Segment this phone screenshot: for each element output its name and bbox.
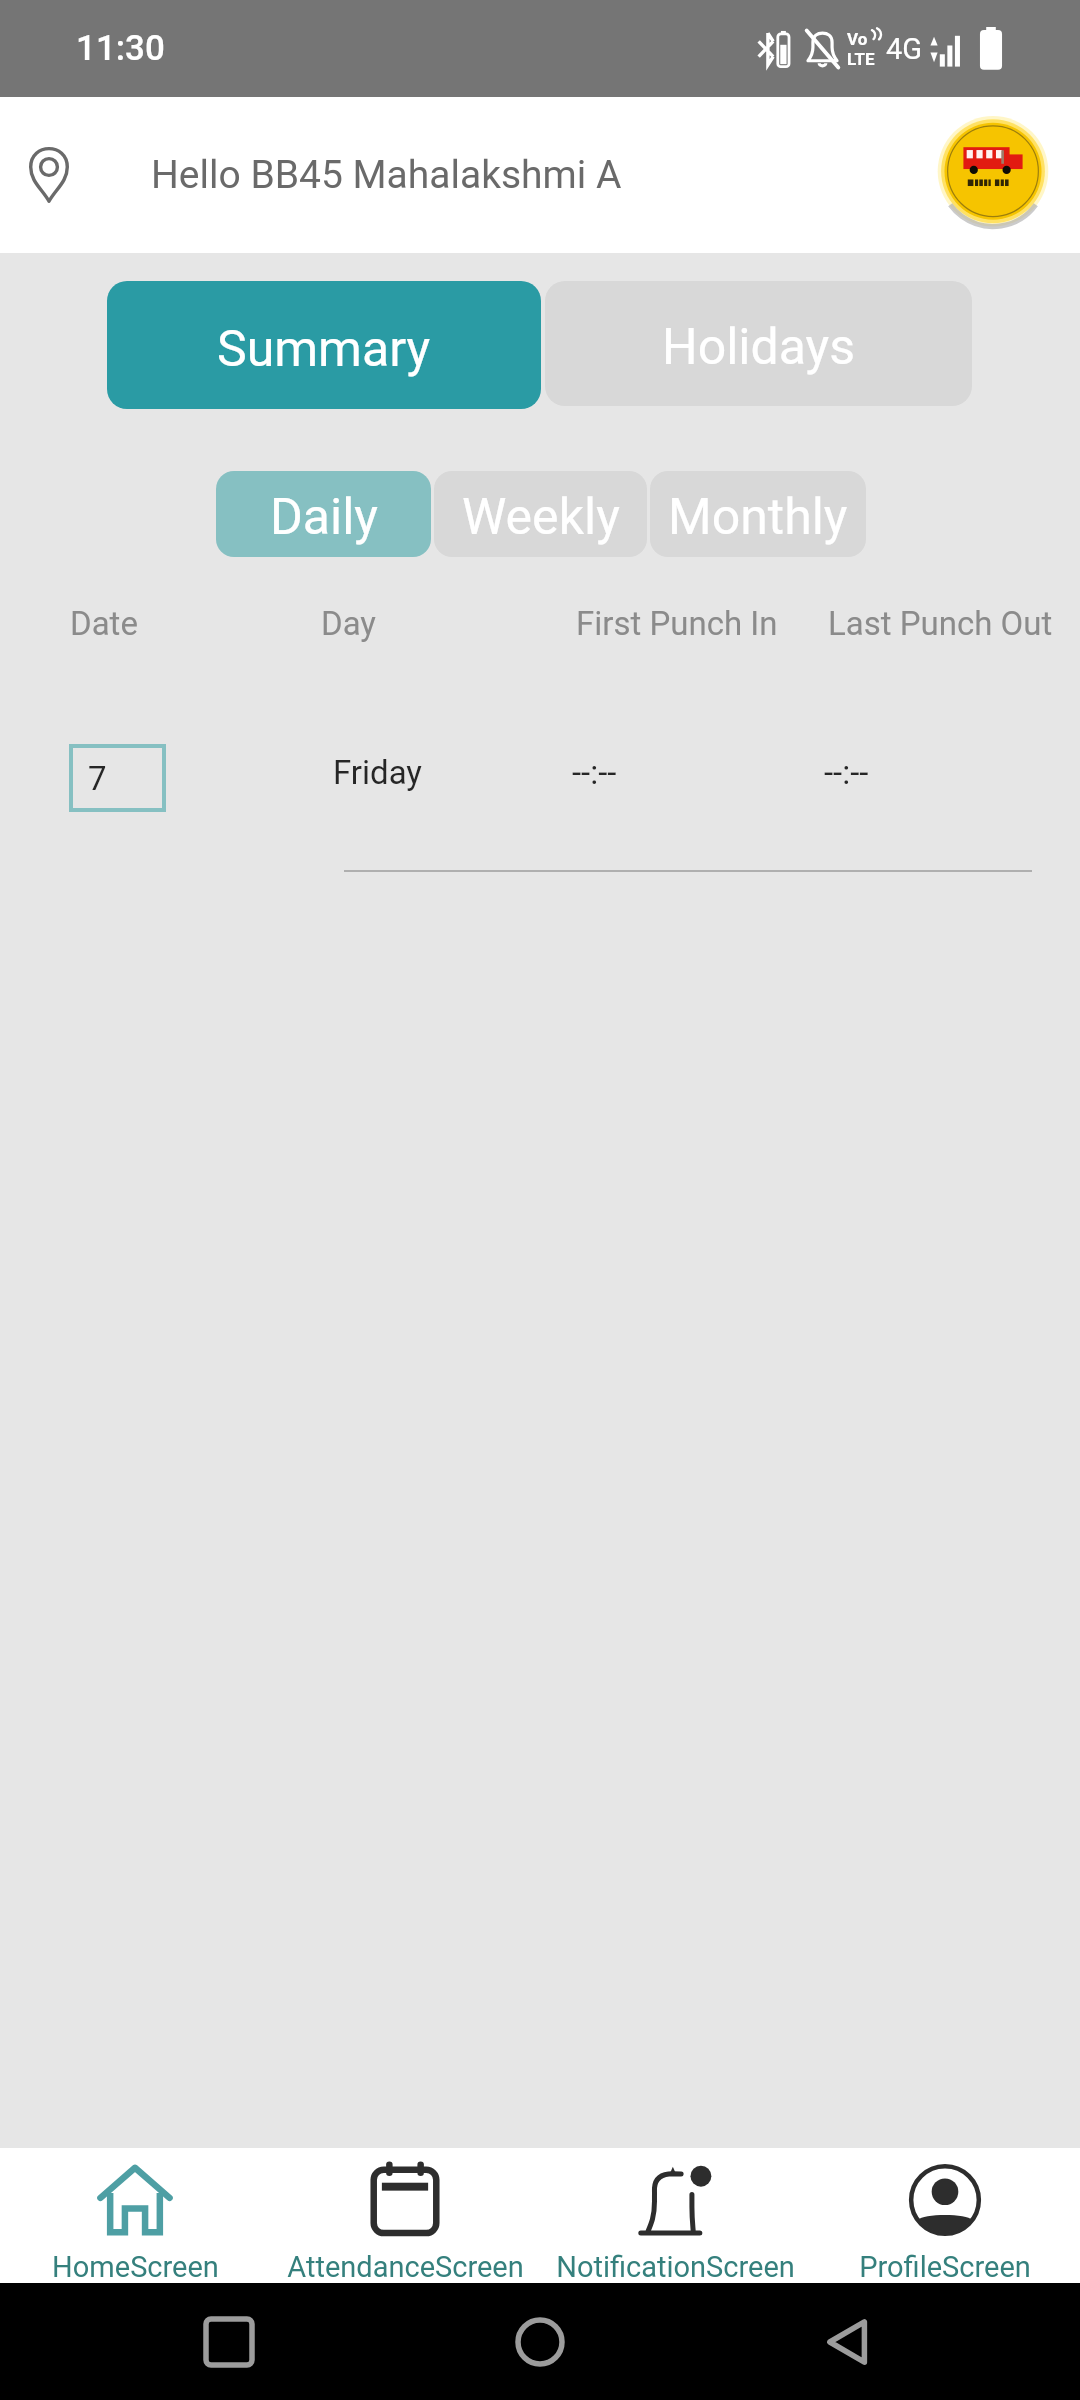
staticText: Monthly bbox=[668, 488, 848, 547]
button[interactable]: NotificationScreen bbox=[540, 2148, 810, 2283]
button[interactable]: ProfileScreen bbox=[810, 2148, 1080, 2283]
button[interactable]: Daily bbox=[216, 471, 431, 557]
staticText: First Punch In bbox=[576, 604, 778, 643]
other: Back bbox=[826, 2318, 874, 2366]
staticText: NotificationScreen bbox=[556, 2250, 795, 2283]
staticText: 7 bbox=[88, 759, 107, 798]
button[interactable]: Monthly bbox=[650, 471, 866, 557]
button[interactable]: Location bbox=[10, 136, 88, 214]
other: Home bbox=[515, 2317, 565, 2367]
button[interactable]: HomeScreen bbox=[0, 2148, 270, 2283]
staticText: LTE bbox=[847, 49, 875, 69]
staticText: Day bbox=[321, 604, 376, 643]
staticText: Date bbox=[70, 604, 138, 643]
button[interactable]: Magic Bus logo bbox=[930, 112, 1056, 238]
staticText: Weekly bbox=[462, 488, 620, 547]
staticText: ProfileScreen bbox=[859, 2250, 1031, 2283]
staticText: Friday bbox=[333, 753, 422, 792]
staticText: HomeScreen bbox=[52, 2250, 219, 2283]
staticText: --:-- bbox=[824, 753, 869, 792]
other: Recent apps bbox=[206, 2319, 252, 2365]
staticText: Daily bbox=[270, 488, 378, 547]
staticText: AttendanceScreen bbox=[287, 2250, 524, 2283]
staticText: Vo bbox=[847, 29, 868, 49]
staticText: Holidays bbox=[662, 318, 855, 377]
button[interactable]: Holidays bbox=[545, 281, 972, 406]
button[interactable]: 7 bbox=[69, 744, 166, 812]
staticText: Hello BB45 Mahalakshmi A bbox=[151, 152, 622, 198]
staticText: Summary bbox=[217, 320, 431, 379]
button[interactable]: Summary bbox=[107, 281, 541, 409]
staticText: 11:30 bbox=[76, 28, 165, 69]
staticText: --:-- bbox=[572, 753, 617, 792]
button[interactable]: AttendanceScreen bbox=[270, 2148, 540, 2283]
staticText: 4G bbox=[886, 32, 923, 66]
button[interactable]: Weekly bbox=[434, 471, 647, 557]
staticText: Last Punch Out bbox=[828, 604, 1053, 643]
